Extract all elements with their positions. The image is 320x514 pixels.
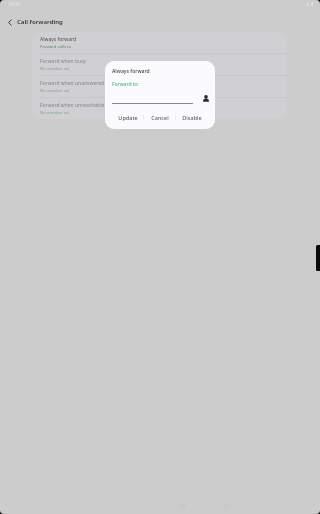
- staticText: Forward when unreachable: [40, 102, 105, 109]
- staticText: No number set: [40, 66, 70, 72]
- staticText: Always forward: [40, 36, 77, 43]
- button[interactable]: Back: [2, 14, 17, 30]
- staticText: Cancel: [151, 114, 169, 121]
- button[interactable]: Disable: [176, 110, 207, 124]
- staticText: Always forward: [112, 68, 150, 75]
- staticText: Forward to:: [112, 81, 139, 88]
- staticText: 10:00: [8, 1, 20, 7]
- button[interactable]: Update: [113, 110, 143, 124]
- button[interactable]: Forward when busy: [32, 54, 287, 75]
- button[interactable]: Always forward: [32, 32, 287, 53]
- staticText: Call forwarding: [17, 18, 63, 26]
- staticText: No number set: [40, 110, 70, 116]
- staticText: No number set: [40, 88, 70, 94]
- button[interactable]: Cancel: [144, 110, 175, 124]
- button[interactable]: Forward when unanswered: [32, 76, 287, 97]
- staticText: Disable: [182, 114, 202, 121]
- button[interactable]: Edge panel: [316, 245, 320, 271]
- staticText: Forward calls to: [40, 44, 72, 50]
- button[interactable]: Pick contact: [200, 92, 212, 104]
- staticText: Forward when unanswered: [40, 80, 105, 87]
- staticText: Forward when busy: [40, 58, 87, 65]
- staticText: Update: [118, 114, 138, 121]
- button[interactable]: Forward when unreachable: [32, 98, 287, 119]
